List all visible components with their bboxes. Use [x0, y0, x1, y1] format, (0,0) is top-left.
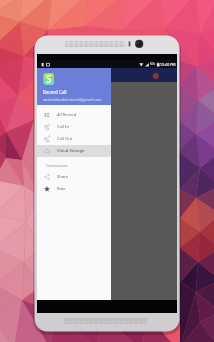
button[interactable]: Share [37, 171, 111, 183]
staticText: Rate [57, 186, 66, 192]
staticText: Record Call [43, 89, 67, 95]
staticText: androidstudiotutorial@gmail.com [43, 97, 102, 102]
button[interactable]: Cloud Storage [37, 145, 111, 157]
staticText: Call In [57, 124, 69, 130]
button[interactable]: Rate [37, 183, 111, 195]
button[interactable]: All Record [37, 109, 111, 121]
staticText: 12:40 PM [160, 62, 176, 67]
staticText: All Record [57, 112, 77, 118]
staticText: Communicate [46, 163, 68, 167]
staticText: M/s [150, 62, 156, 66]
staticText: Share [57, 174, 68, 180]
staticText: Call Out [57, 136, 73, 142]
staticText: Cloud Storage [57, 148, 85, 154]
button[interactable]: Call Out [37, 133, 111, 145]
button[interactable]: Call In [37, 121, 111, 133]
